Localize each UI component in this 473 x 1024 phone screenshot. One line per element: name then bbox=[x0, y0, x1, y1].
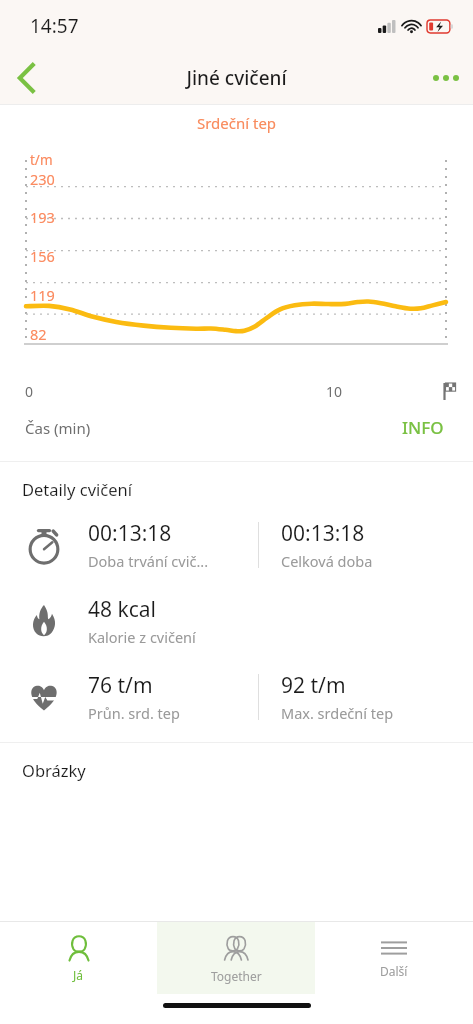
staticText: 156 bbox=[30, 246, 55, 266]
staticText: 00:13:18 bbox=[281, 519, 365, 548]
button[interactable]: Together bbox=[157, 922, 315, 994]
button[interactable]: Back bbox=[0, 52, 54, 104]
staticText: Together bbox=[211, 968, 262, 984]
button[interactable]: INFO bbox=[398, 412, 448, 443]
staticText: Celková doba bbox=[281, 551, 373, 571]
staticText: 119 bbox=[30, 285, 55, 305]
staticText: 00:13:18 bbox=[88, 519, 172, 548]
staticText: 14:57 bbox=[30, 13, 79, 39]
staticText: 82 bbox=[30, 324, 47, 344]
staticText: Já bbox=[73, 967, 84, 983]
staticText: Další bbox=[380, 963, 408, 979]
staticText: Obrázky bbox=[22, 759, 86, 781]
staticText: 92 t/m bbox=[281, 671, 346, 700]
staticText: 76 t/m bbox=[88, 671, 153, 700]
staticText: 193 bbox=[30, 207, 55, 227]
staticText: 0 bbox=[25, 382, 34, 401]
staticText: 48 kcal bbox=[88, 595, 156, 624]
staticText: INFO bbox=[402, 416, 444, 439]
staticText: Kalorie z cvičení bbox=[88, 627, 196, 647]
staticText: Max. srdeční tep bbox=[281, 703, 394, 723]
button[interactable]: 00:13:18 bbox=[0, 516, 473, 574]
staticText: Detaily cvičení bbox=[22, 478, 133, 500]
staticText: Průn. srd. tep bbox=[88, 703, 180, 723]
staticText: t/m bbox=[30, 151, 53, 169]
staticText: Jiné cvičení bbox=[186, 65, 287, 91]
staticText: Čas (min) bbox=[25, 418, 91, 438]
staticText: Doba trvání cvič... bbox=[88, 551, 209, 571]
button[interactable]: Já bbox=[0, 922, 157, 994]
staticText: Srdeční tep bbox=[0, 113, 473, 133]
button[interactable]: Další bbox=[315, 922, 473, 994]
staticText: 230 bbox=[30, 169, 55, 189]
button[interactable]: 76 t/m bbox=[0, 668, 473, 726]
button[interactable]: More options bbox=[419, 52, 473, 104]
staticText: 10 bbox=[326, 382, 343, 401]
button[interactable]: 48 kcal bbox=[0, 592, 473, 650]
